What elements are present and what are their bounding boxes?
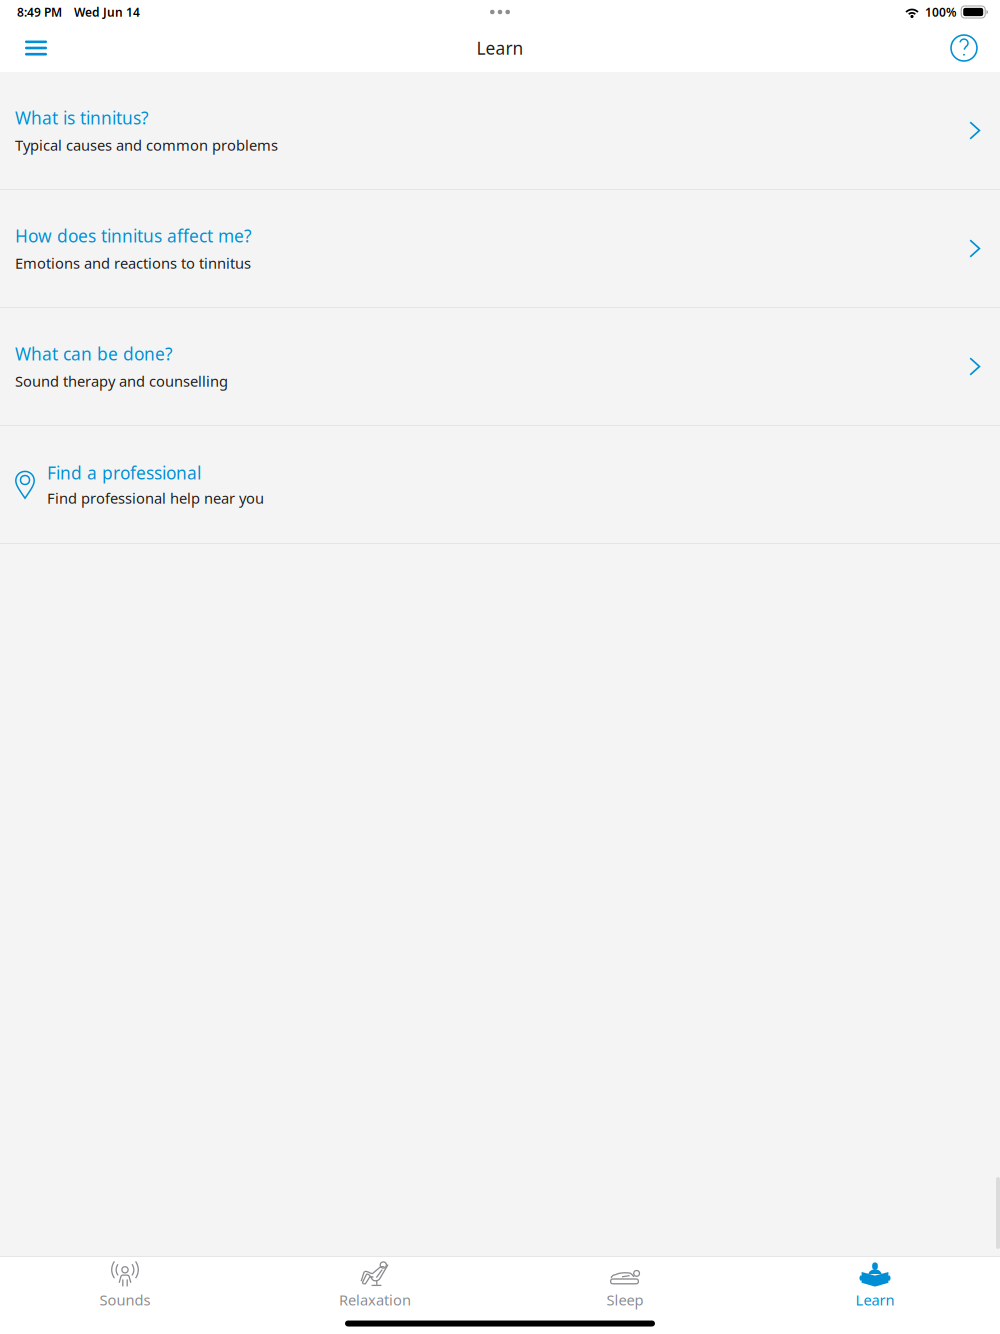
button[interactable]: What is tinnitus? — [0, 72, 1000, 189]
staticText: Learn — [855, 1290, 894, 1309]
staticText: Wed Jun 14 — [74, 4, 140, 20]
staticText: How does tinnitus affect me? — [15, 224, 252, 247]
staticText: Emotions and reactions to tinnitus — [15, 253, 251, 273]
staticText: Sound therapy and counselling — [15, 371, 228, 391]
staticText: What is tinnitus? — [15, 106, 149, 129]
button[interactable]: Menu — [12, 24, 60, 72]
staticText: Find professional help near you — [47, 488, 264, 508]
staticText: Sleep — [606, 1290, 643, 1309]
staticText: What can be done? — [15, 342, 173, 365]
staticText: Sounds — [99, 1290, 150, 1309]
staticText: Learn — [476, 36, 523, 59]
button[interactable]: Sleep — [500, 1257, 750, 1313]
button[interactable]: Relaxation — [250, 1257, 500, 1313]
staticText: 100% — [925, 4, 957, 20]
button[interactable]: Find a professional — [0, 426, 1000, 543]
button[interactable]: What can be done? — [0, 308, 1000, 425]
staticText: Typical causes and common problems — [15, 135, 278, 155]
button[interactable]: Sounds — [0, 1257, 250, 1313]
button[interactable]: Learn — [750, 1257, 1000, 1313]
staticText: 8:49 PM — [17, 4, 62, 20]
staticText: Find a professional — [47, 461, 201, 484]
button[interactable]: How does tinnitus affect me? — [0, 190, 1000, 307]
staticText: Relaxation — [339, 1290, 411, 1309]
button[interactable]: Help — [940, 24, 988, 72]
